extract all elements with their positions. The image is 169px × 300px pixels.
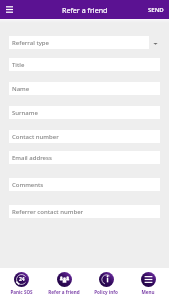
button[interactable]: SEND	[142, 0, 169, 19]
button[interactable]: Email address	[9, 151, 160, 164]
button[interactable]: Contact number	[9, 130, 160, 143]
button[interactable]: Title	[9, 58, 160, 71]
staticText: Panic SOS	[10, 289, 33, 295]
button[interactable]: 24	[0, 268, 43, 300]
staticText: Contact number	[12, 133, 59, 141]
staticText: Comments	[12, 181, 44, 189]
staticText: Referrer contact number	[12, 208, 84, 216]
staticText: Policy info	[94, 289, 118, 295]
button[interactable]: Refer a friend	[43, 268, 85, 300]
button[interactable]: Open navigation drawer	[0, 0, 19, 19]
staticText: Referral type	[12, 39, 50, 47]
staticText: Email address	[12, 154, 52, 162]
button[interactable]: Policy info	[85, 268, 127, 300]
staticText: Refer a friend	[48, 289, 80, 295]
staticText: Name	[12, 85, 30, 93]
button[interactable]: Referral type	[9, 36, 149, 49]
button[interactable]: Menu	[127, 268, 169, 300]
staticText: Menu	[141, 289, 155, 295]
staticText: Title	[12, 61, 25, 69]
button[interactable]: Surname	[9, 106, 160, 119]
staticText: 24	[19, 276, 25, 283]
staticText: Surname	[12, 109, 38, 117]
button[interactable]: Referrer contact number	[9, 205, 160, 218]
button[interactable]: Select referral type	[153, 41, 158, 46]
staticText: Refer a friend	[62, 5, 108, 15]
button[interactable]: Name	[9, 82, 160, 95]
staticText: SEND	[148, 6, 164, 14]
button[interactable]: Comments	[9, 178, 160, 191]
